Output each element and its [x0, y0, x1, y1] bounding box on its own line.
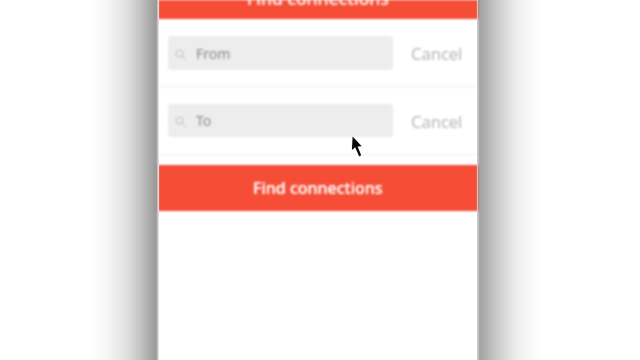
staticText: From	[196, 44, 231, 63]
other: Search	[175, 116, 186, 127]
button[interactable]: Cancel	[399, 36, 474, 70]
button[interactable]: Find connections	[158, 165, 478, 211]
staticText: Cancel	[411, 42, 463, 64]
button[interactable]: Search	[168, 104, 393, 137]
button[interactable]: Cancel	[399, 104, 474, 137]
staticText: Find connections	[247, 0, 389, 5]
staticText: Find connections	[253, 177, 383, 199]
button[interactable]: Search	[168, 36, 393, 70]
button[interactable]: Find connections	[158, 0, 478, 19]
staticText: To	[196, 111, 212, 130]
staticText: Cancel	[411, 110, 463, 132]
other: Search	[175, 49, 186, 60]
